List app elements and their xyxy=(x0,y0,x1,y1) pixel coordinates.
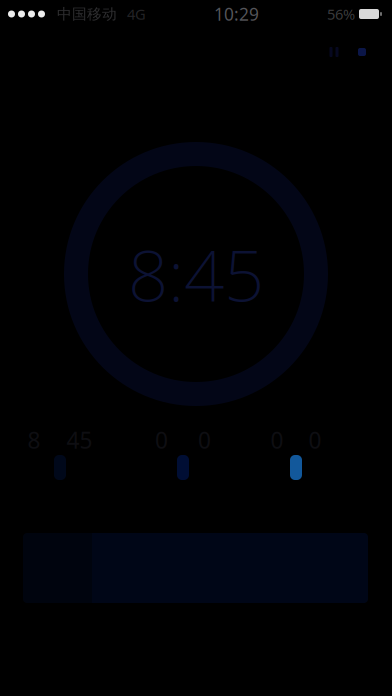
button[interactable]: Adjust xyxy=(290,455,302,480)
button[interactable]: Timer panel xyxy=(23,533,368,603)
button[interactable]: Pause xyxy=(320,38,348,66)
staticText: 0 xyxy=(155,425,168,455)
staticText: 中国移动 xyxy=(57,5,117,23)
staticText: 10:29 xyxy=(214,2,259,25)
staticText: 0 xyxy=(198,425,211,455)
staticText: 45 xyxy=(66,425,92,455)
staticText: 0 xyxy=(270,425,283,455)
staticText: 8:45 xyxy=(128,227,264,321)
staticText: 56% xyxy=(327,4,355,24)
staticText: 8 xyxy=(27,425,40,455)
button[interactable]: Adjust xyxy=(177,455,189,480)
staticText: 4G xyxy=(127,4,146,24)
button[interactable]: Adjust xyxy=(54,455,66,480)
staticText: 0 xyxy=(308,425,321,455)
button[interactable]: Stop xyxy=(348,38,376,66)
